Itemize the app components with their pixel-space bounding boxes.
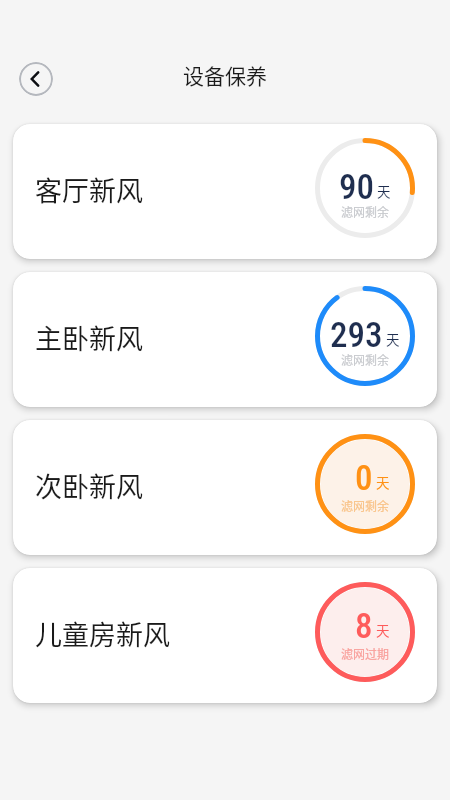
button[interactable]: 主卧新风 bbox=[13, 272, 437, 407]
staticText: 293 bbox=[330, 315, 383, 356]
staticText: 设备保养 bbox=[183, 60, 267, 90]
staticText: 滤网剩余 bbox=[341, 351, 390, 368]
button[interactable]: 儿童房新风 bbox=[13, 568, 437, 703]
staticText: 8 bbox=[355, 606, 373, 647]
staticText: 天 bbox=[386, 329, 400, 349]
staticText: 天 bbox=[376, 472, 390, 492]
staticText: 次卧新风 bbox=[35, 466, 143, 505]
staticText: 天 bbox=[376, 620, 390, 640]
staticText: 主卧新风 bbox=[35, 318, 143, 357]
staticText: 滤网剩余 bbox=[341, 203, 390, 220]
button[interactable]: Back bbox=[19, 62, 53, 96]
staticText: 90 bbox=[339, 167, 374, 208]
staticText: 滤网剩余 bbox=[341, 497, 390, 514]
button[interactable]: 客厅新风 bbox=[13, 124, 437, 259]
staticText: 天 bbox=[377, 181, 391, 201]
staticText: 滤网过期 bbox=[341, 645, 390, 662]
button[interactable]: 次卧新风 bbox=[13, 420, 437, 555]
staticText: 客厅新风 bbox=[35, 170, 143, 209]
staticText: 儿童房新风 bbox=[35, 614, 170, 653]
staticText: 0 bbox=[355, 458, 373, 499]
